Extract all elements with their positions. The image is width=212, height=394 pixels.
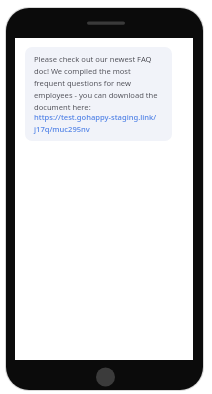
- button[interactable]: Home: [96, 367, 116, 387]
- staticText: Please check out our newest FAQ doc! We …: [34, 54, 163, 112]
- button[interactable]: Please check out our newest FAQ doc! We …: [25, 47, 172, 141]
- staticText: https://test.gohappy-staging.link/j17q/m…: [34, 112, 163, 134]
- button[interactable]: Open link https://test.gohappy-staging.l…: [34, 112, 163, 134]
